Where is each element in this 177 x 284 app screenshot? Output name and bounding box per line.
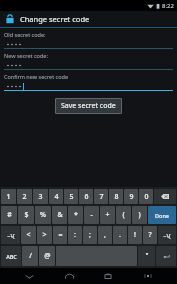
staticText: 3 bbox=[38, 192, 43, 202]
button[interactable]: 2 bbox=[17, 189, 32, 204]
button[interactable]: ( bbox=[116, 206, 131, 224]
staticText: 9 bbox=[129, 192, 134, 202]
button[interactable]: Done bbox=[148, 206, 176, 224]
button[interactable]: 5 bbox=[64, 189, 78, 204]
button[interactable]: ) bbox=[132, 206, 147, 224]
button[interactable]: $ bbox=[18, 206, 34, 224]
staticText: ABC bbox=[6, 253, 17, 260]
button[interactable]: 9 bbox=[124, 189, 138, 204]
staticText: * bbox=[74, 210, 78, 220]
button[interactable]: Confirm new secret code bbox=[4, 73, 173, 94]
staticText: . bbox=[119, 230, 121, 240]
button[interactable]: & bbox=[52, 206, 67, 224]
staticText: ; bbox=[89, 230, 91, 240]
button[interactable]: . bbox=[113, 226, 127, 244]
staticText: @ bbox=[44, 251, 51, 261]
staticText: = bbox=[58, 230, 63, 240]
button[interactable]: Recent apps bbox=[97, 268, 119, 284]
button[interactable]: 3 bbox=[33, 189, 48, 204]
staticText: ( bbox=[122, 210, 125, 220]
button[interactable]: New secret code: bbox=[4, 52, 173, 73]
staticText: Done bbox=[155, 212, 169, 219]
button[interactable]: # bbox=[1, 206, 17, 224]
staticText: ? bbox=[148, 230, 152, 240]
staticText: 6 bbox=[84, 192, 89, 202]
button[interactable]: ABC bbox=[1, 246, 21, 266]
button[interactable]: , bbox=[98, 226, 112, 244]
button[interactable]: > bbox=[37, 226, 52, 244]
staticText: $ bbox=[24, 210, 29, 220]
button[interactable]: 6 bbox=[79, 189, 93, 204]
button[interactable]: ? bbox=[143, 226, 157, 244]
staticText: - bbox=[90, 210, 93, 220]
button[interactable]: Home bbox=[58, 268, 80, 284]
button[interactable]: Enter bbox=[156, 246, 176, 266]
staticText: ~\{ bbox=[7, 232, 15, 239]
button[interactable]: Delete bbox=[154, 189, 176, 204]
staticText: : bbox=[74, 230, 76, 240]
button[interactable]: 1 bbox=[1, 189, 16, 204]
staticText: 7 bbox=[99, 192, 104, 202]
staticText: + bbox=[105, 210, 110, 220]
button[interactable]: : bbox=[68, 226, 82, 244]
staticText: , bbox=[104, 230, 106, 240]
button[interactable]: 0 bbox=[139, 189, 153, 204]
staticText: 5 bbox=[69, 192, 74, 202]
button[interactable]: ~\{ bbox=[1, 226, 20, 244]
staticText: Save secret code bbox=[61, 101, 116, 111]
button[interactable]: @ bbox=[39, 246, 55, 266]
staticText: 4 bbox=[54, 192, 59, 202]
staticText: / bbox=[29, 251, 32, 261]
button[interactable]: Screenshot bbox=[137, 268, 159, 284]
button[interactable]: - bbox=[84, 206, 99, 224]
staticText: ! bbox=[134, 230, 136, 240]
button[interactable]: " bbox=[138, 246, 155, 266]
button[interactable]: 7 bbox=[94, 189, 108, 204]
button[interactable]: ; bbox=[83, 226, 97, 244]
staticText: Change secret code bbox=[20, 14, 90, 24]
button[interactable]: < bbox=[21, 226, 36, 244]
staticText: 2 bbox=[22, 192, 27, 202]
staticText: New secret code: bbox=[4, 52, 48, 59]
staticText: ) bbox=[138, 210, 141, 220]
staticText: > bbox=[42, 230, 47, 240]
staticText: 1 bbox=[6, 192, 11, 202]
button[interactable]: Old secret code: bbox=[4, 31, 173, 52]
staticText: 0 bbox=[144, 192, 149, 202]
button[interactable]: ~\{ bbox=[158, 226, 176, 244]
button[interactable]: * bbox=[68, 206, 83, 224]
button[interactable]: = bbox=[53, 226, 67, 244]
staticText: " bbox=[145, 251, 149, 261]
staticText: 8 bbox=[114, 192, 119, 202]
staticText: Old secret code: bbox=[4, 31, 46, 38]
staticText: 8:22 bbox=[162, 2, 174, 10]
button[interactable]: / bbox=[22, 246, 38, 266]
button[interactable]: % bbox=[35, 206, 51, 224]
staticText: # bbox=[7, 210, 12, 220]
staticText: < bbox=[26, 230, 31, 240]
button[interactable]: 8 bbox=[109, 189, 123, 204]
button[interactable]: Back bbox=[18, 268, 40, 284]
staticText: % bbox=[40, 210, 46, 220]
staticText: & bbox=[57, 210, 63, 220]
button[interactable]: Save secret code bbox=[55, 98, 122, 114]
button[interactable]: ! bbox=[128, 226, 142, 244]
staticText: ~\{ bbox=[163, 232, 171, 239]
button[interactable]: 4 bbox=[49, 189, 63, 204]
button[interactable]: + bbox=[100, 206, 115, 224]
staticText: Confirm new secret code bbox=[4, 73, 69, 80]
